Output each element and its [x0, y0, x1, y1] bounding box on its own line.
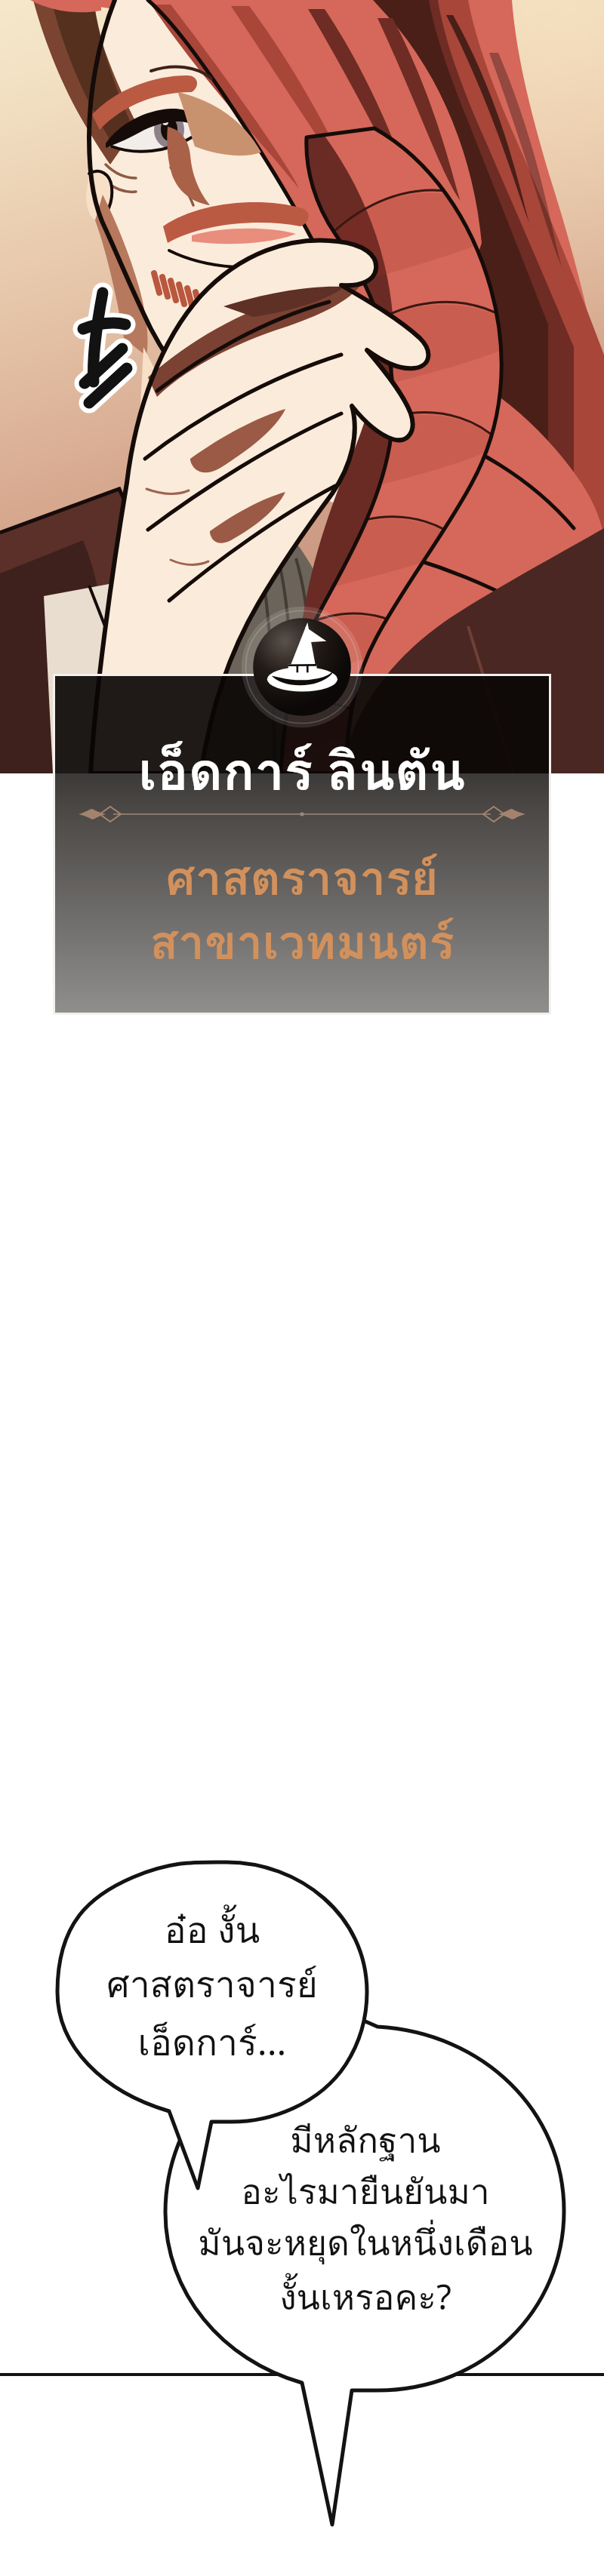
staticText: เอ็ดการ์ ลินตัน [53, 730, 551, 813]
staticText: มีหลักฐาน อะไรมายืนยันมา มันจะหยุดในหนึ่… [184, 2113, 547, 2339]
staticText: อ๋อ งั้น ศาสตราจารย์ เอ็ดการ์... [65, 1901, 359, 2090]
staticText: ศาสตราจารย์ สาขาเวทมนตร์ [53, 841, 551, 979]
button[interactable]: เอ็ดการ์ ลินตัน [53, 674, 551, 1015]
button[interactable]: Character emblem [241, 606, 363, 728]
